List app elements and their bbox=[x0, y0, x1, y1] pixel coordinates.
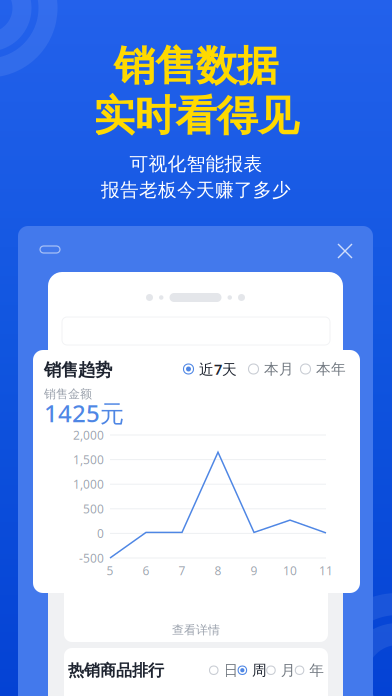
staticText: 1,000 bbox=[73, 476, 104, 492]
button[interactable]: 近7天 bbox=[183, 362, 237, 376]
staticText: 1425元 bbox=[44, 397, 124, 429]
staticText: 年 bbox=[309, 661, 324, 679]
staticText: 11 bbox=[319, 562, 333, 578]
staticText: -500 bbox=[79, 550, 104, 566]
button[interactable]: 周 bbox=[238, 664, 266, 676]
staticText: 0 bbox=[97, 525, 104, 541]
staticText: 5 bbox=[106, 562, 113, 578]
staticText: 日 bbox=[223, 661, 238, 679]
button[interactable]: Close bbox=[330, 236, 360, 266]
staticText: 周 bbox=[252, 661, 267, 679]
staticText: 月 bbox=[281, 661, 296, 679]
staticText: 热销商品排行 bbox=[68, 661, 164, 680]
staticText: 9 bbox=[250, 562, 257, 578]
button[interactable]: 日 bbox=[209, 664, 237, 676]
staticText: 6 bbox=[142, 562, 149, 578]
staticText: 本年 bbox=[316, 360, 346, 378]
staticText: 8 bbox=[214, 562, 221, 578]
staticText: 2,000 bbox=[73, 427, 104, 443]
button[interactable]: 本月 bbox=[248, 362, 294, 376]
staticText: 报告老板今天赚了多少 bbox=[101, 178, 291, 201]
staticText: 10 bbox=[283, 562, 297, 578]
button[interactable]: 月 bbox=[266, 664, 295, 676]
staticText: 7 bbox=[178, 562, 185, 578]
staticText: 查看详情 bbox=[172, 623, 220, 637]
staticText: 可视化智能报表 bbox=[129, 152, 262, 175]
staticText: 销售金额 bbox=[44, 387, 92, 401]
staticText: 销售数据 bbox=[114, 41, 278, 91]
staticText: 500 bbox=[83, 501, 104, 517]
staticText: 近7天 bbox=[199, 359, 237, 379]
button[interactable]: 本年 bbox=[300, 362, 346, 376]
staticText: 本月 bbox=[264, 360, 294, 378]
staticText: 实时看得见 bbox=[93, 91, 298, 141]
staticText: 销售趋势 bbox=[44, 359, 112, 381]
button[interactable]: 年 bbox=[295, 664, 323, 676]
staticText: 1,500 bbox=[73, 452, 104, 467]
